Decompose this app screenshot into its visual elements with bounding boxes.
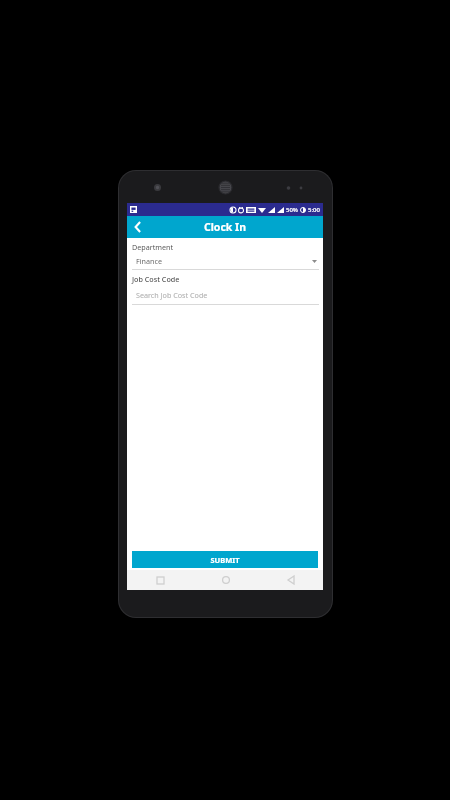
button[interactable]: Home: [193, 570, 258, 590]
staticText: 50%: [286, 206, 298, 214]
button[interactable]: Search Job Cost Code: [127, 290, 323, 305]
button[interactable]: Recent apps: [127, 570, 193, 590]
staticText: SUBMIT: [210, 555, 240, 565]
staticText: Job Cost Code: [132, 274, 180, 284]
button[interactable]: SUBMIT: [132, 551, 318, 568]
staticText: 5:00: [308, 206, 320, 214]
staticText: Finance: [136, 256, 312, 266]
staticText: Clock In: [204, 220, 246, 234]
button[interactable]: Finance: [127, 256, 323, 270]
button[interactable]: Back: [258, 570, 323, 590]
staticText: Department: [132, 242, 174, 252]
staticText: Search Job Cost Code: [136, 290, 208, 300]
button[interactable]: Back: [127, 216, 149, 238]
